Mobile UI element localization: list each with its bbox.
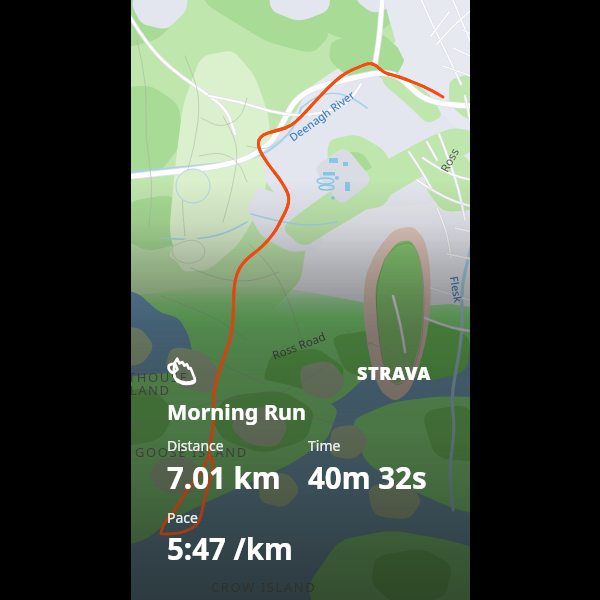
staticText: Time (308, 436, 341, 455)
staticText: Ross Road (270, 328, 328, 363)
staticText: 40m 32s (308, 457, 427, 497)
staticText: CROW ISLAND (211, 578, 317, 596)
staticText: Ross (437, 145, 463, 175)
staticText: SLAND (131, 381, 171, 399)
staticText: Deenagh River (286, 86, 358, 144)
staticText: GOOSE ISLAND (135, 443, 248, 461)
staticText: Morning Run (167, 397, 306, 426)
staticText: STRAVA (357, 361, 431, 386)
staticText: 5:47 /km (167, 528, 293, 568)
staticText: 7.01 km (167, 457, 281, 497)
staticText: Pace (167, 508, 198, 527)
staticText: Distance (167, 436, 224, 455)
staticText: Flesk (447, 275, 466, 304)
staticText: ATHOUSE (131, 368, 189, 386)
other: Run activity (167, 356, 198, 386)
